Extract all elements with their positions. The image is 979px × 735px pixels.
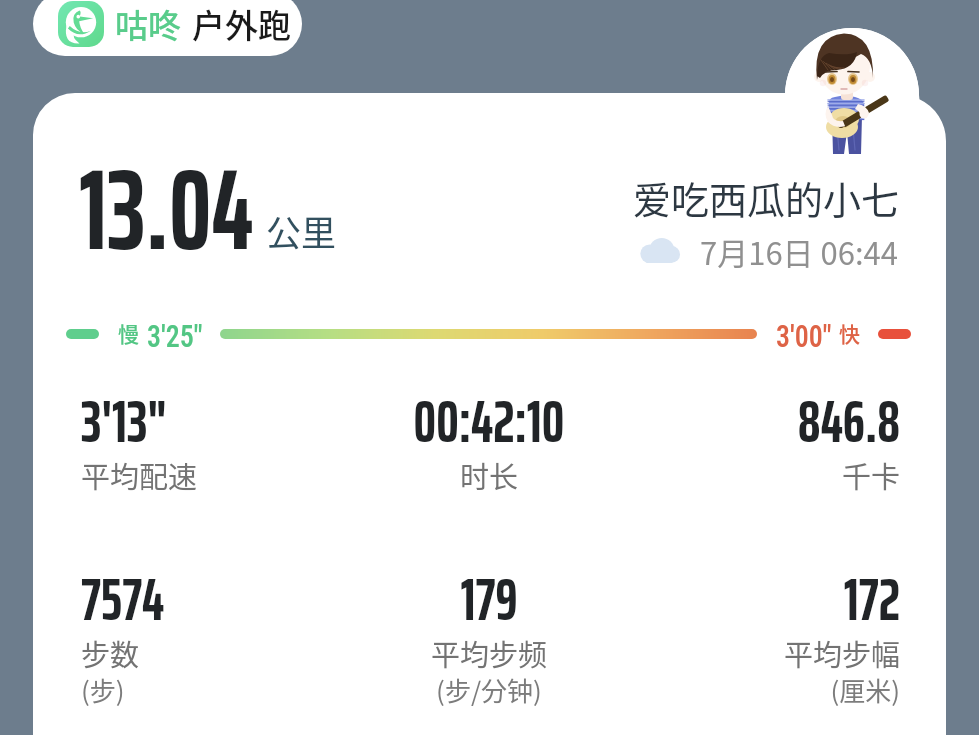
- staticText: 时长: [289, 454, 689, 496]
- staticText: 平均配速: [81, 454, 481, 496]
- button[interactable]: Codoon: [33, 0, 302, 56]
- staticText: 慢: [118, 318, 139, 348]
- staticText: 7574: [81, 552, 457, 646]
- staticText: 13.04: [79, 120, 253, 299]
- staticText: 3'00": [776, 318, 832, 354]
- staticText: 步数: [81, 632, 481, 674]
- staticText: 172: [524, 552, 900, 646]
- staticText: 00:42:10: [301, 374, 677, 468]
- staticText: 7月16日 06:44: [700, 229, 898, 274]
- staticText: 户外跑: [192, 0, 291, 48]
- staticText: (厘米): [500, 671, 900, 709]
- other: Codoon: [58, 1, 104, 47]
- staticText: 3'13": [81, 374, 457, 468]
- staticText: 快: [839, 318, 860, 348]
- staticText: 179: [301, 552, 677, 646]
- staticText: 公里: [266, 205, 337, 256]
- staticText: (步): [81, 671, 481, 709]
- staticText: 平均步频: [289, 632, 689, 674]
- staticText: 千卡: [500, 454, 900, 496]
- staticText: 平均步幅: [500, 632, 900, 674]
- staticText: 846.8: [524, 374, 900, 468]
- staticText: 3'25": [147, 318, 203, 354]
- staticText: 爱吃西瓜的小七: [440, 170, 899, 735]
- staticText: (步/分钟): [289, 671, 689, 709]
- staticText: 咕咚: [115, 0, 181, 48]
